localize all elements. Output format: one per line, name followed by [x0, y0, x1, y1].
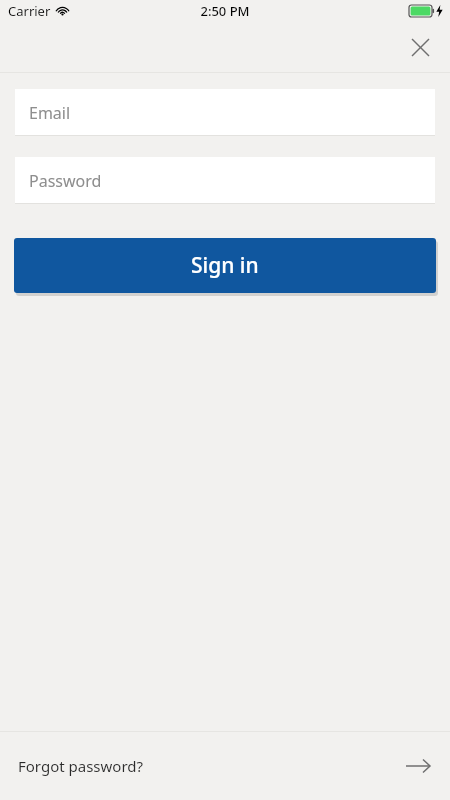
- button[interactable]: Email: [15, 89, 435, 136]
- button[interactable]: Password: [15, 157, 435, 204]
- staticText: Carrier: [8, 2, 51, 20]
- staticText: Forgot password?: [18, 756, 144, 776]
- staticText: 2:50 PM: [200, 2, 250, 20]
- staticText: Password: [29, 170, 102, 192]
- button[interactable]: Close: [400, 27, 440, 67]
- staticText: Sign in: [191, 251, 259, 280]
- button[interactable]: Sign in: [14, 238, 436, 293]
- button[interactable]: Forgot password?: [0, 732, 450, 800]
- other: Go: [401, 749, 435, 783]
- staticText: Email: [29, 102, 71, 124]
